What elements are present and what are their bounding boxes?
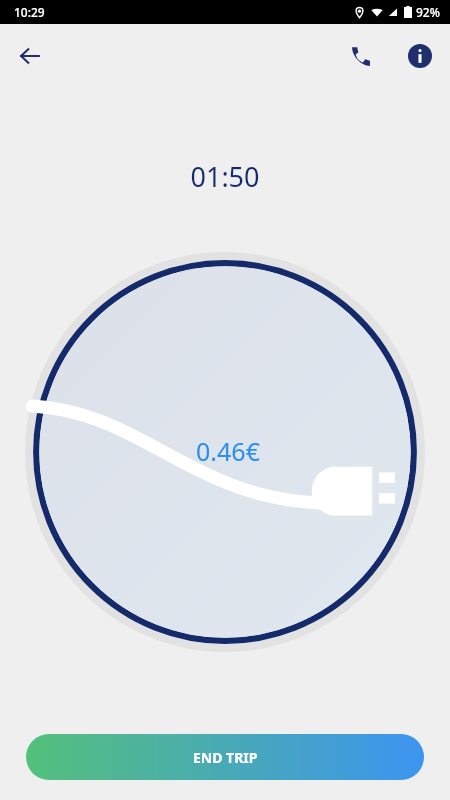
button[interactable]: Back	[10, 36, 50, 76]
button[interactable]: END TRIP	[26, 734, 424, 780]
staticText: 10:29	[14, 4, 45, 20]
button[interactable]: Info	[398, 34, 442, 78]
staticText: 92%	[416, 4, 440, 20]
button[interactable]: Call	[338, 34, 382, 78]
staticText: 01:50	[0, 158, 450, 195]
staticText: 0.46€	[196, 434, 260, 468]
staticText: END TRIP	[193, 748, 258, 767]
